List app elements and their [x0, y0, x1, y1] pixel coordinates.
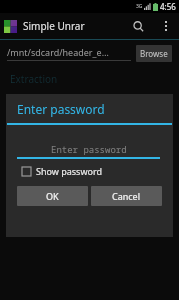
button[interactable]: Enter password	[17, 142, 160, 159]
staticText: Enter password	[51, 143, 127, 155]
button[interactable]: Cancel	[91, 186, 162, 206]
button[interactable]: Browse	[136, 45, 172, 62]
button[interactable]: Show password	[22, 165, 102, 177]
button[interactable]: /mnt/sdcard/header_e…	[7, 46, 131, 61]
staticText: Browse	[140, 48, 168, 59]
button[interactable]: OK	[17, 186, 88, 206]
staticText: /mnt/sdcard/header_e…	[7, 46, 109, 58]
staticText: OK	[46, 190, 59, 202]
staticText: Simple Unrar	[23, 19, 85, 33]
staticText: Enter password	[17, 101, 105, 117]
button[interactable]: More options	[155, 15, 177, 37]
staticText: Cancel	[112, 190, 141, 202]
staticText: Extraction	[10, 72, 58, 86]
button[interactable]: Search	[125, 13, 151, 39]
staticText: 4:56	[160, 1, 176, 12]
staticText: 3G	[136, 3, 143, 10]
staticText: Show password	[36, 165, 102, 177]
